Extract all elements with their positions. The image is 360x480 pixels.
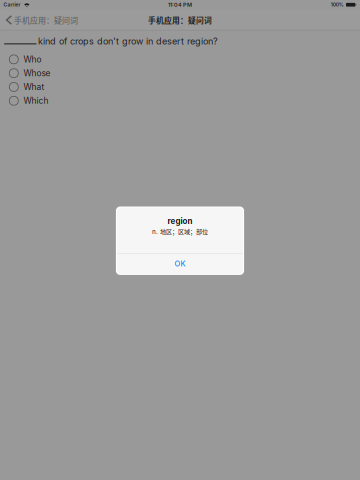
staticText: 手机应用：疑问词 bbox=[14, 14, 78, 26]
staticText: What bbox=[24, 82, 45, 92]
staticText: n. 地区；区域；部位 bbox=[152, 227, 208, 236]
staticText: region bbox=[167, 216, 192, 226]
staticText: OK bbox=[174, 259, 185, 268]
staticText: 100% bbox=[331, 2, 344, 8]
button[interactable]: OK bbox=[117, 254, 243, 274]
button[interactable]: What bbox=[0, 80, 360, 94]
staticText: Whose bbox=[24, 68, 51, 78]
staticText: Carrier bbox=[3, 2, 20, 8]
button[interactable]: Whose bbox=[0, 66, 360, 80]
staticText: Who bbox=[24, 54, 42, 64]
staticText: 11:04 PM bbox=[168, 1, 192, 8]
staticText: 手机应用：疑问词 bbox=[148, 14, 212, 26]
button[interactable]: Who bbox=[0, 52, 360, 66]
staticText: Which bbox=[24, 96, 49, 106]
button[interactable]: Which bbox=[0, 94, 360, 108]
button[interactable]: 手机应用：疑问词 bbox=[0, 10, 82, 30]
staticText: kind of crops don't grow in desert regio… bbox=[38, 36, 218, 47]
